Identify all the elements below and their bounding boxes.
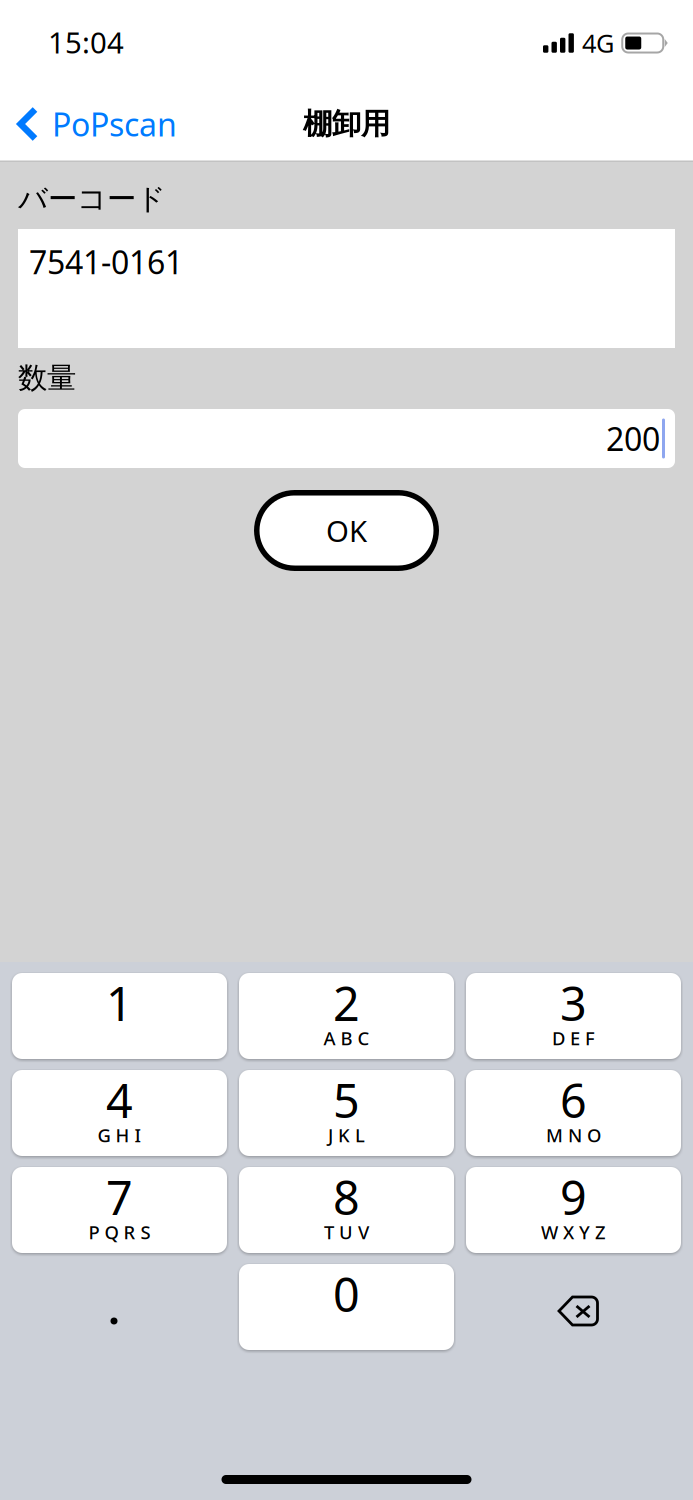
staticText: OK (326, 510, 367, 550)
button[interactable]: 6 (466, 1070, 681, 1156)
staticText: バーコード (18, 180, 166, 217)
staticText: PoPscan (52, 102, 177, 146)
button[interactable]: Delete (466, 1264, 681, 1350)
staticText: M N O (546, 1122, 601, 1148)
staticText: 15:04 (48, 22, 124, 62)
staticText: 1 (106, 971, 133, 1035)
button[interactable]: 5 (239, 1070, 454, 1156)
button[interactable]: OK (254, 490, 439, 571)
staticText: P Q R S (88, 1219, 150, 1245)
staticText: G H I (97, 1122, 141, 1148)
staticText: 200 (606, 417, 660, 460)
staticText: A B C (323, 1025, 369, 1051)
button[interactable]: 0 (239, 1264, 454, 1350)
staticText: 3 (560, 971, 587, 1035)
staticText: T U V (324, 1219, 369, 1245)
staticText: 数量 (18, 359, 76, 396)
staticText: 0 (333, 1262, 360, 1326)
button[interactable]: 4 (12, 1070, 227, 1156)
staticText: 2 (333, 971, 360, 1035)
staticText: D E F (552, 1025, 595, 1051)
button[interactable]: 1 (12, 973, 227, 1059)
button[interactable]: 2 (239, 973, 454, 1059)
button[interactable]: 8 (239, 1167, 454, 1253)
staticText: 7541-0161 (29, 240, 183, 284)
staticText: J K L (328, 1122, 365, 1148)
button[interactable]: 9 (466, 1167, 681, 1253)
button[interactable]: 3 (466, 973, 681, 1059)
staticText: 6 (560, 1068, 587, 1132)
staticText: 棚卸用 (303, 105, 390, 142)
staticText: 5 (333, 1068, 360, 1132)
staticText: 9 (560, 1165, 587, 1229)
staticText: 4 (106, 1068, 133, 1132)
button[interactable]: PoPscan (0, 90, 191, 158)
button[interactable]: 7 (12, 1167, 227, 1253)
button[interactable]: Decimal point (12, 1264, 227, 1350)
staticText: 8 (333, 1165, 360, 1229)
staticText: 7 (106, 1165, 133, 1229)
staticText: W X Y Z (541, 1219, 606, 1245)
staticText: 4G (582, 26, 614, 60)
